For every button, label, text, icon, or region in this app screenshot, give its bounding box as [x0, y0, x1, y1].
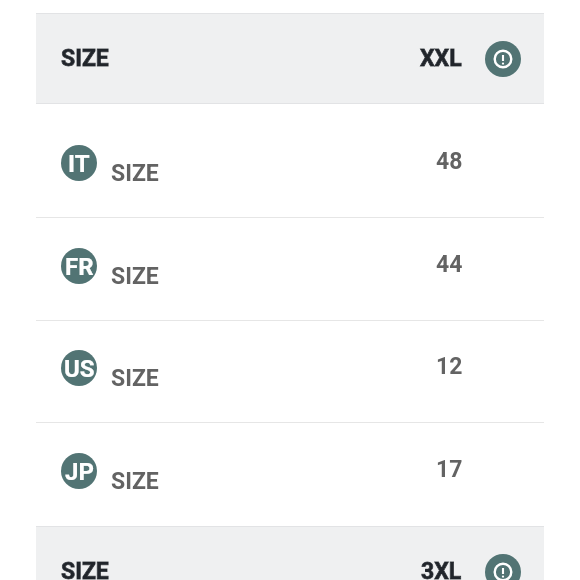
button[interactable]: Size guide info — [485, 41, 521, 77]
button[interactable]: JP — [36, 423, 544, 526]
staticText: XXL — [420, 45, 462, 72]
staticText: SIZE — [61, 558, 109, 580]
staticText: SIZE — [111, 160, 159, 187]
staticText: 3XL — [421, 558, 462, 580]
staticText: SIZE — [61, 558, 109, 580]
staticText: SIZE — [111, 263, 159, 290]
staticText: SIZE — [61, 45, 109, 72]
staticText: FR — [65, 253, 94, 281]
staticText: SIZE — [111, 468, 159, 495]
staticText: SIZE — [61, 45, 109, 72]
button[interactable]: IT — [36, 115, 544, 218]
button[interactable]: SIZE — [36, 526, 544, 580]
staticText: 48 — [436, 148, 463, 175]
staticText: 44 — [436, 251, 463, 278]
staticText: 3XL — [421, 558, 462, 580]
staticText: JP — [65, 458, 94, 486]
staticText: XXL — [420, 45, 462, 72]
staticText: 12 — [436, 353, 463, 380]
staticText: SIZE — [111, 365, 159, 392]
button[interactable]: US — [36, 320, 544, 423]
staticText: IT — [68, 150, 90, 178]
staticText: US — [64, 355, 95, 383]
staticText: 17 — [436, 456, 463, 483]
button[interactable]: FR — [36, 218, 544, 321]
button[interactable]: SIZE — [36, 13, 544, 104]
button[interactable]: Size guide info — [485, 554, 521, 580]
